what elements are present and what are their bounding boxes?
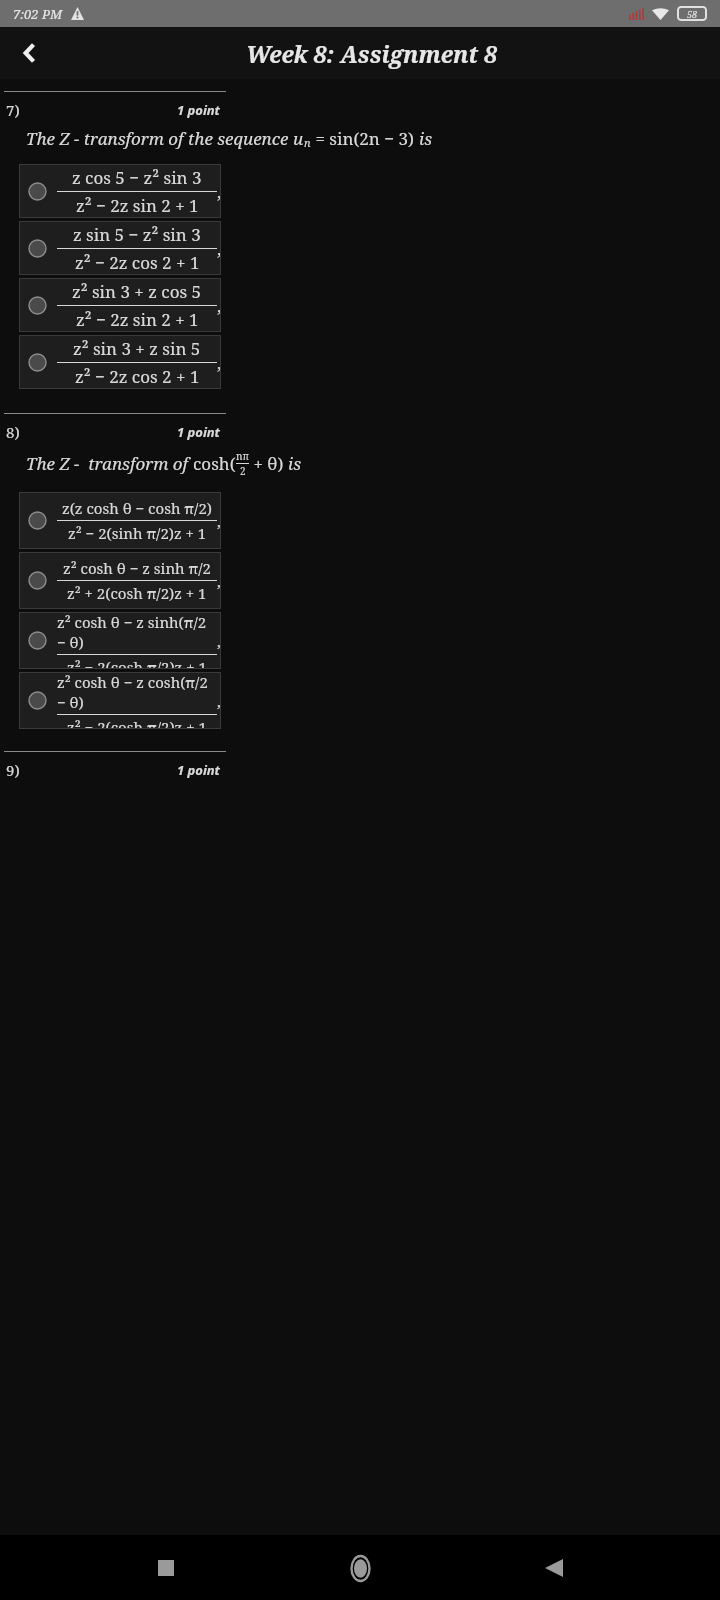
staticText: z² − 2(cosh π/2)z + 1	[67, 717, 207, 729]
button[interactable]: Home	[332, 1540, 388, 1596]
staticText: u	[293, 127, 304, 150]
staticText: cosh(	[193, 452, 236, 475]
staticText: is	[288, 452, 302, 475]
button[interactable]: z cos 5 − z² sin 3	[19, 164, 221, 218]
staticText: 1 point	[177, 761, 220, 779]
staticText: z(z cosh θ − cosh π/2)	[62, 498, 212, 518]
button[interactable]: z(z cosh θ − cosh π/2)	[19, 492, 221, 549]
staticText: 9)	[6, 760, 20, 780]
staticText: z² − 2(cosh π/2)z + 1	[67, 657, 207, 669]
staticText: 8)	[6, 422, 20, 442]
staticText: The Z − transform of	[26, 452, 193, 475]
staticText: z² cosh θ − z cosh(π/2 − θ)	[57, 672, 217, 712]
button[interactable]: z sin 5 − z² sin 3	[19, 221, 221, 275]
button[interactable]: z² cosh θ − z sinh(π/2 − θ)	[19, 612, 221, 669]
staticText: Week 8: Assignment 8	[246, 38, 497, 69]
button[interactable]: z² sin 3 + z sin 5	[19, 335, 221, 389]
staticText: 7)	[6, 100, 20, 120]
staticText: z² − 2(sinh π/2)z + 1	[68, 523, 207, 543]
button[interactable]: Back	[526, 1540, 582, 1596]
staticText: z cos 5 − z² sin 3	[72, 166, 202, 189]
staticText: 7:02 PM	[13, 5, 63, 23]
button[interactable]: z² cosh θ − z cosh(π/2 − θ)	[19, 672, 221, 729]
staticText: z sin 5 − z² sin 3	[73, 223, 201, 246]
button[interactable]: z² cosh θ − z sinh π/2	[19, 552, 221, 609]
staticText: n	[304, 135, 311, 150]
staticText: z² − 2z sin 2 + 1	[76, 308, 199, 331]
staticText: 1 point	[177, 423, 220, 441]
staticText: z² cosh θ − z sinh π/2	[63, 558, 211, 578]
button[interactable]: Back	[8, 31, 52, 75]
staticText: z² − 2z sin 2 + 1	[76, 194, 199, 217]
staticText: = sin(2n − 3)	[311, 127, 419, 150]
staticText: is	[419, 127, 433, 150]
staticText: z² − 2z cos 2 + 1	[75, 365, 200, 388]
staticText: The Z − transform of the sequence	[26, 127, 293, 150]
staticText: 58	[687, 8, 698, 20]
button[interactable]: z² sin 3 + z cos 5	[19, 278, 221, 332]
staticText: + θ)	[249, 452, 288, 475]
staticText: nπ	[236, 449, 249, 463]
staticText: z² cosh θ − z sinh(π/2 − θ)	[57, 612, 217, 652]
staticText: z² − 2z cos 2 + 1	[75, 251, 200, 274]
button[interactable]: Recent apps	[138, 1540, 194, 1596]
staticText: z² sin 3 + z sin 5	[73, 337, 201, 360]
staticText: z² + 2(cosh π/2)z + 1	[67, 583, 207, 603]
staticText: 2	[240, 464, 246, 478]
staticText: 1 point	[177, 101, 220, 119]
staticText: z² sin 3 + z cos 5	[72, 280, 202, 303]
